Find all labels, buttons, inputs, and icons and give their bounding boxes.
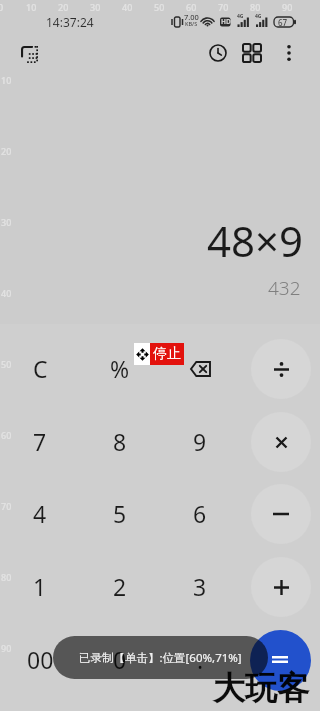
staticText: 4G xyxy=(237,13,244,20)
staticText: 1 xyxy=(33,571,47,602)
staticText: 4G xyxy=(255,13,262,20)
staticText: 80 xyxy=(250,1,261,13)
staticText: 50 xyxy=(154,1,165,13)
button[interactable]: . xyxy=(168,627,232,691)
button[interactable]: 8 xyxy=(88,409,152,473)
button[interactable]: 0 xyxy=(88,627,152,691)
staticText: 6 xyxy=(193,498,207,529)
staticText: 9 xyxy=(193,426,207,457)
button[interactable]: 2 xyxy=(88,554,152,618)
staticText: 90 xyxy=(1,642,12,654)
staticText: 70 xyxy=(218,1,229,13)
staticText: 20 xyxy=(1,145,12,157)
staticText: 4 xyxy=(33,498,47,529)
button[interactable]: Move xyxy=(134,343,184,365)
other: Move xyxy=(134,343,150,365)
staticText: 0 xyxy=(113,644,127,675)
button[interactable]: Screenshot xyxy=(15,40,43,68)
staticText: 7 xyxy=(33,426,47,457)
staticText: 已录制【单击】:位置[60%,71%] xyxy=(79,650,242,666)
button[interactable] xyxy=(251,412,311,472)
staticText: 60 xyxy=(186,1,197,13)
staticText: 10 xyxy=(26,1,37,13)
button[interactable] xyxy=(251,557,311,617)
staticText: 60 xyxy=(1,429,12,441)
staticText: 2 xyxy=(113,571,127,602)
button[interactable]: More options xyxy=(275,39,303,67)
staticText: 3 xyxy=(193,571,207,602)
button[interactable]: 4 xyxy=(8,481,72,545)
staticText: 大玩客 xyxy=(213,668,309,708)
staticText: 432 xyxy=(268,275,301,301)
staticText: KB/S xyxy=(185,20,198,27)
staticText: 8 xyxy=(113,426,127,457)
staticText: 40 xyxy=(1,287,12,299)
button[interactable]: Backspace xyxy=(170,339,230,399)
button[interactable]: Apps xyxy=(238,39,266,67)
staticText: 停止 xyxy=(153,345,181,363)
button[interactable] xyxy=(251,339,311,399)
button[interactable]: 9 xyxy=(168,409,232,473)
staticText: 30 xyxy=(90,1,101,13)
staticText: 67 xyxy=(278,17,288,28)
staticText: 90 xyxy=(282,1,293,13)
button[interactable]: 5 xyxy=(88,481,152,545)
button[interactable]: 00 xyxy=(8,627,72,691)
staticText: 30 xyxy=(1,216,12,228)
staticText: 70 xyxy=(1,500,12,512)
staticText: 0 xyxy=(0,1,4,13)
staticText: C xyxy=(33,353,48,384)
button[interactable]: Equals xyxy=(250,630,311,691)
staticText: 48×9 xyxy=(207,212,304,269)
button[interactable]: History xyxy=(204,39,232,67)
staticText: HD xyxy=(221,17,231,26)
button[interactable]: 6 xyxy=(168,481,232,545)
staticText: 20 xyxy=(58,1,69,13)
button[interactable]: 3 xyxy=(168,554,232,618)
staticText: 40 xyxy=(122,1,133,13)
button[interactable] xyxy=(251,484,311,544)
staticText: 50 xyxy=(1,358,12,370)
staticText: 00 xyxy=(27,644,54,675)
button[interactable]: 7 xyxy=(8,409,72,473)
staticText: 10 xyxy=(1,74,12,86)
staticText: 14:37:24 xyxy=(46,14,94,30)
button[interactable]: 1 xyxy=(8,554,72,618)
staticText: . xyxy=(197,644,204,675)
button[interactable]: C xyxy=(8,336,72,400)
staticText: % xyxy=(110,353,130,384)
staticText: 7.00 xyxy=(184,12,199,22)
staticText: 80 xyxy=(1,571,12,583)
button[interactable]: % xyxy=(88,336,152,400)
staticText: 5 xyxy=(113,498,127,529)
